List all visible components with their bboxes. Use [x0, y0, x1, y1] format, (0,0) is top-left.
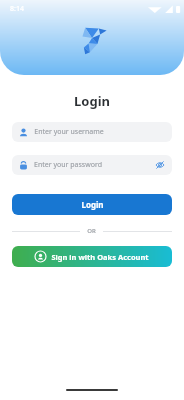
button[interactable]: Enter your username: [12, 122, 172, 142]
staticText: Sign in with Oaks Account: [51, 252, 149, 262]
staticText: OR: [87, 227, 96, 235]
staticText: Login: [74, 92, 110, 110]
button[interactable]: Login: [12, 194, 172, 215]
button[interactable]: Sign in with Oaks Account: [12, 246, 172, 267]
staticText: 8:14: [10, 4, 24, 14]
staticText: Enter your password: [34, 160, 102, 170]
staticText: Login: [81, 199, 104, 210]
button[interactable]: Enter your password: [12, 155, 172, 175]
staticText: Enter your username: [34, 127, 104, 137]
button[interactable]: Show password: [155, 160, 165, 170]
